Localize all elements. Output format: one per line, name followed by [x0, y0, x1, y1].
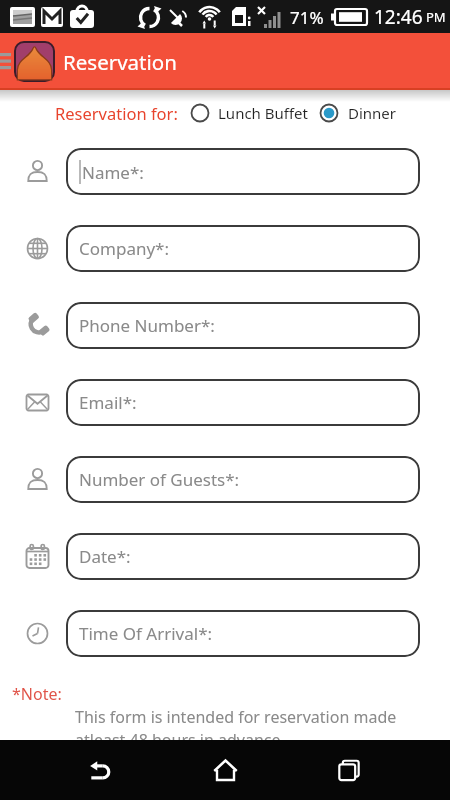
staticText: 71%: [290, 6, 324, 29]
staticText: Reservation: [63, 48, 177, 76]
staticText: Name*:: [82, 161, 144, 184]
staticText: PM: [426, 8, 446, 26]
staticText: Phone Number*:: [79, 314, 215, 337]
button[interactable]: [203, 748, 247, 792]
staticText: This form is intended for reservation ma…: [75, 706, 397, 751]
staticText: Dinner: [348, 103, 397, 123]
staticText: Time Of Arrival*:: [79, 622, 213, 645]
staticText: Company*:: [79, 237, 170, 260]
button[interactable]: Phone Number*:: [66, 302, 420, 349]
staticText: Date*:: [79, 545, 131, 568]
staticText: 12:46: [374, 4, 423, 30]
button[interactable]: [327, 748, 371, 792]
staticText: *Note:: [12, 683, 62, 705]
button[interactable]: Number of Guests*:: [66, 456, 420, 503]
button[interactable]: Company*:: [66, 225, 420, 272]
button[interactable]: Dinner: [319, 103, 397, 123]
staticText: Reservation for:: [55, 102, 178, 124]
button[interactable]: Lunch Buffet: [190, 103, 308, 123]
staticText: Number of Guests*:: [79, 468, 240, 491]
button[interactable]: Date*:: [66, 533, 420, 580]
button[interactable]: Name*:: [66, 148, 420, 195]
button[interactable]: Time Of Arrival*:: [66, 610, 420, 657]
button[interactable]: [78, 748, 122, 792]
staticText: Email*:: [79, 391, 137, 414]
button[interactable]: Email*:: [66, 379, 420, 426]
button[interactable]: [15, 42, 54, 81]
staticText: Lunch Buffet: [218, 103, 308, 123]
